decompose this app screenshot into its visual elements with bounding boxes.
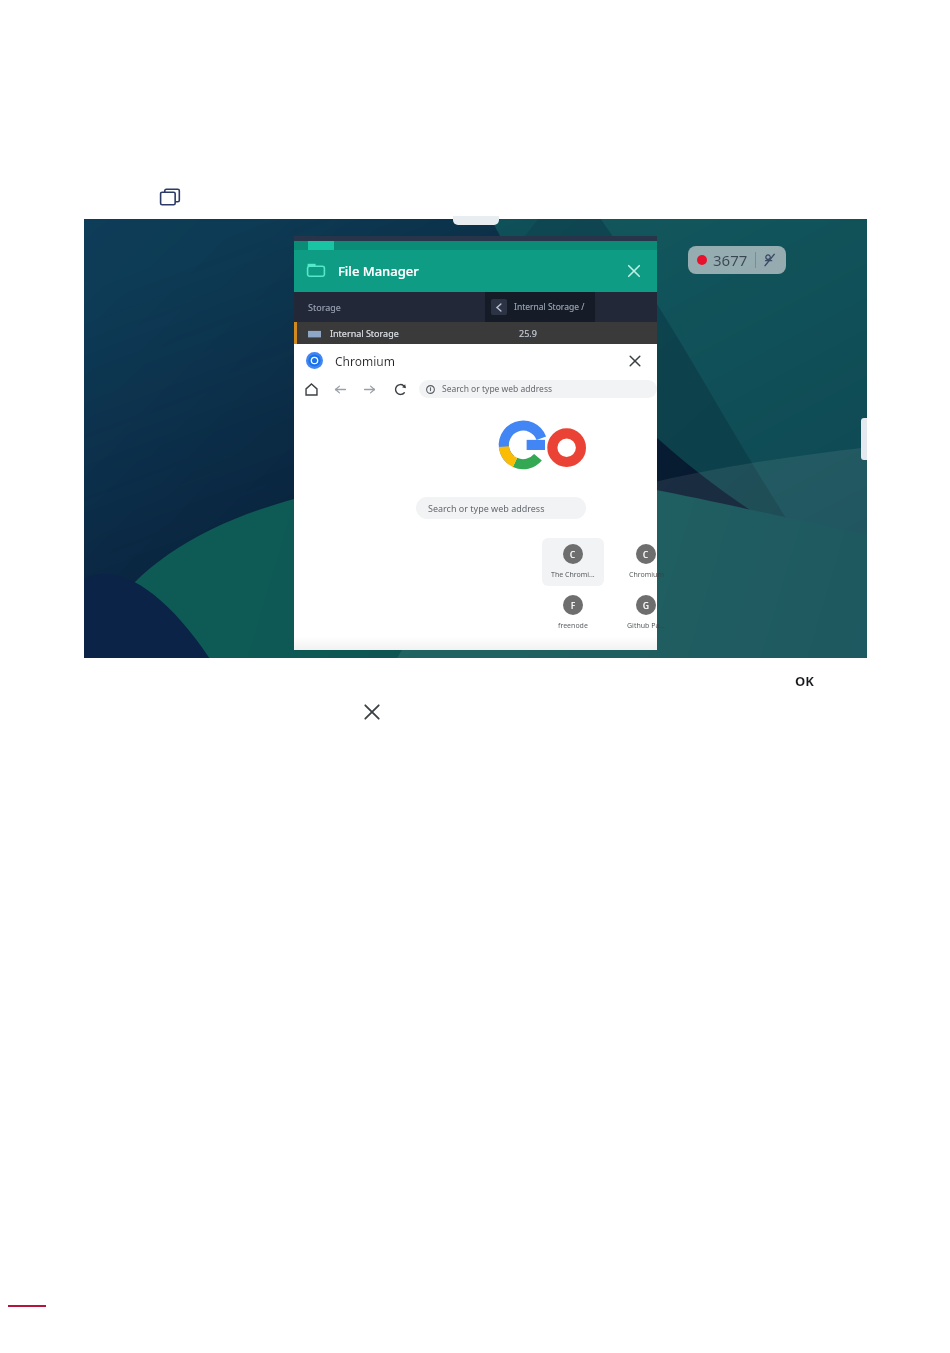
button[interactable]: Windows [158,185,184,209]
button[interactable]: Forward [363,383,376,396]
staticText: G [643,600,649,611]
staticText: File Manager [338,262,419,280]
staticText: 3677 [713,250,748,270]
button[interactable]: F [542,589,604,637]
staticText: C [570,549,576,560]
button[interactable]: Home [305,383,318,396]
staticText: freenode [558,621,588,631]
button[interactable]: Back [334,383,347,396]
staticText: Chromium [335,353,395,369]
other: Edit [763,253,777,267]
button[interactable]: Close File Manager [623,260,645,282]
staticText: Github Pa... [627,621,665,631]
staticText: F [571,600,576,611]
button[interactable]: OK [795,672,814,690]
button[interactable]: Search or type web address [416,497,586,519]
staticText: The Chromi... [551,570,595,580]
staticText: Chromium [629,570,664,580]
button[interactable]: Edge panel [861,418,867,460]
staticText: Storage [308,301,341,313]
button[interactable]: Up [491,299,507,315]
staticText: Search or type web address [442,383,553,395]
button[interactable]: Reload [394,383,407,396]
staticText: Search or type web address [428,502,545,514]
button[interactable]: 3677 [688,246,786,274]
button[interactable]: C [615,538,677,586]
button[interactable]: Close Chromium [625,351,645,371]
staticText: C [643,549,649,560]
staticText: Internal Storage / [514,301,585,313]
staticText: Internal Storage [330,327,399,339]
button[interactable]: Close [360,700,384,724]
button[interactable]: Search or type web address [419,380,657,398]
button[interactable]: C [542,538,604,586]
staticText: 25.9 [519,327,537,339]
button[interactable]: G [615,589,677,637]
